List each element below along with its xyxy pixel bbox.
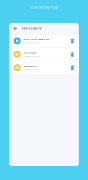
button[interactable]: 4901780372119 <box>9 61 79 74</box>
button[interactable]: Barcode Scanner <box>9 23 79 34</box>
button[interactable]: Delete <box>70 65 74 70</box>
staticText: 4901780372119 <box>23 64 36 68</box>
staticText: https://www.google.com <box>23 38 49 41</box>
button[interactable]: 9501101530003 <box>9 48 79 61</box>
staticText: Jul 18 2021, 04:40:58 <box>23 68 40 71</box>
staticText: 9501101530003 <box>23 51 36 54</box>
button[interactable]: Delete <box>70 38 74 44</box>
staticText: Barcode Scanner <box>22 27 42 30</box>
button[interactable]: https://www.google.com <box>9 34 79 47</box>
staticText: Jul 18 2021, 04:41:12 <box>23 55 40 57</box>
staticText: Scan History Page <box>29 5 58 9</box>
button[interactable]: Delete <box>70 52 74 57</box>
staticText: Jul 18 2021, 04:41:35 <box>23 42 40 44</box>
